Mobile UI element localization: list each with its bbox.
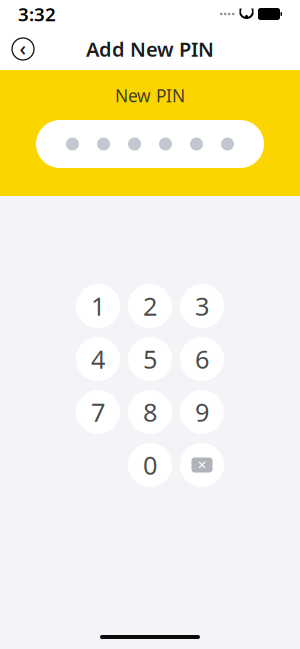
- button[interactable]: Back: [8, 34, 38, 64]
- button[interactable]: 5: [128, 337, 172, 381]
- staticText: ✕: [197, 458, 207, 472]
- button[interactable]: 9: [180, 390, 224, 434]
- button[interactable]: 2: [128, 284, 172, 328]
- staticText: 0: [143, 448, 157, 482]
- staticText: 2: [143, 289, 157, 323]
- button[interactable]: 7: [76, 390, 120, 434]
- staticText: 1: [91, 289, 105, 323]
- button[interactable]: 4: [76, 337, 120, 381]
- button[interactable]: 1: [76, 284, 120, 328]
- button[interactable]: 0: [128, 443, 172, 487]
- staticText: 8: [143, 395, 157, 429]
- staticText: 6: [195, 342, 209, 376]
- staticText: 3:32: [18, 2, 56, 26]
- staticText: 5: [143, 342, 157, 376]
- button[interactable]: 6: [180, 337, 224, 381]
- staticText: 7: [91, 395, 105, 429]
- staticText: New PIN: [115, 84, 185, 107]
- button[interactable]: 8: [128, 390, 172, 434]
- button[interactable]: 3: [180, 284, 224, 328]
- button[interactable]: Delete: [180, 443, 224, 487]
- staticText: ‹: [19, 35, 26, 61]
- staticText: 3: [195, 289, 209, 323]
- staticText: Add New PIN: [86, 36, 214, 62]
- staticText: 4: [91, 342, 105, 376]
- staticText: 9: [195, 395, 209, 429]
